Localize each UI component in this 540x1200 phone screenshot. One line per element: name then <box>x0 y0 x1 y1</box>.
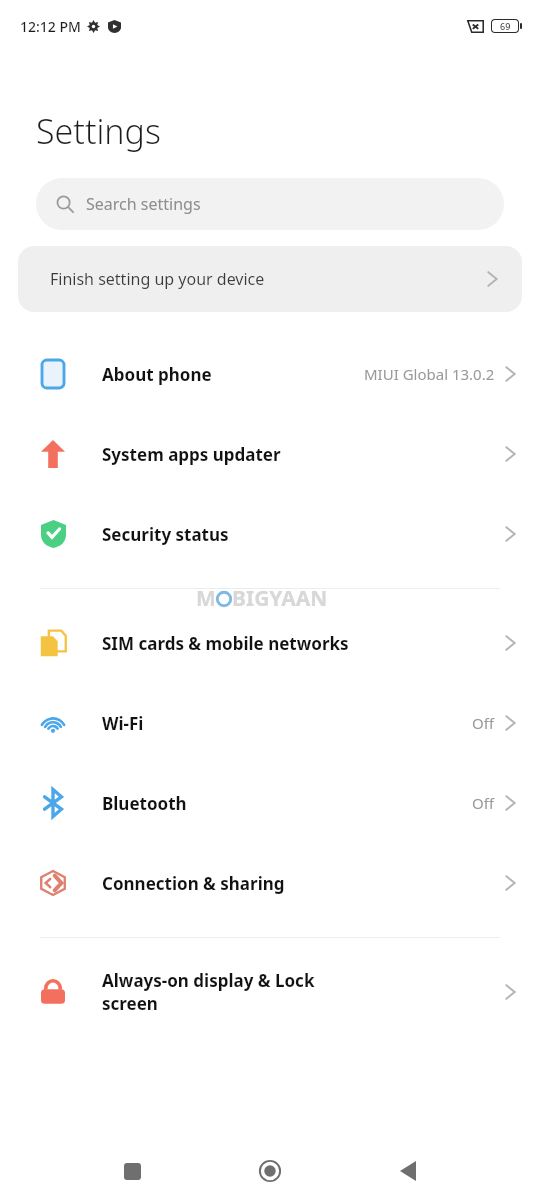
button[interactable]: Search settings <box>36 178 504 230</box>
button[interactable]: Finish setting up your device <box>18 246 522 312</box>
staticText: 69 <box>500 20 511 32</box>
button[interactable]: Bluetooth <box>0 763 540 843</box>
staticText: Security status <box>102 523 505 546</box>
staticText: MIUI Global 13.0.2 <box>364 364 495 384</box>
staticText: System apps updater <box>102 443 505 466</box>
button[interactable]: SIM cards & mobile networks <box>0 603 540 683</box>
staticText: Wi-Fi <box>102 712 472 735</box>
staticText: M <box>196 584 216 613</box>
staticText: About phone <box>102 363 364 386</box>
button[interactable]: Security status <box>0 494 540 574</box>
staticText: Search settings <box>86 193 201 215</box>
staticText: Always-on display & Lock screen <box>102 969 505 1015</box>
button[interactable]: Recent apps <box>110 1149 154 1193</box>
staticText: Off <box>472 713 495 733</box>
staticText: Finish setting up your device <box>50 268 487 290</box>
button[interactable]: Back <box>386 1149 430 1193</box>
button[interactable]: Wi-Fi <box>0 683 540 763</box>
button[interactable]: About phone <box>0 334 540 414</box>
staticText: Bluetooth <box>102 792 472 815</box>
button[interactable]: Home <box>248 1149 292 1193</box>
button[interactable]: Always-on display & Lock screen <box>0 952 540 1032</box>
staticText: Settings <box>36 108 161 154</box>
staticText: SIM cards & mobile networks <box>102 632 505 655</box>
staticText: Off <box>472 793 495 813</box>
staticText: 12:12 PM <box>20 17 81 36</box>
button[interactable]: Connection & sharing <box>0 843 540 923</box>
button[interactable]: System apps updater <box>0 414 540 494</box>
staticText: Connection & sharing <box>102 872 505 895</box>
staticText: BIGYAAN <box>232 584 328 613</box>
